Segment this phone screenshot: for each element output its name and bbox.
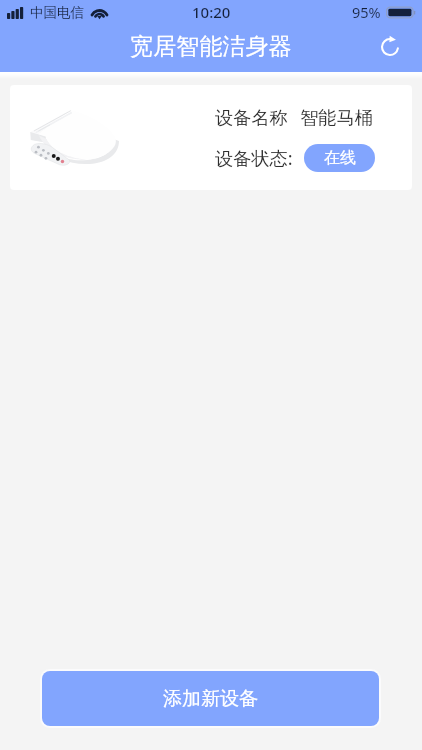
button[interactable]: 在线 [304,144,375,172]
staticText: 智能马桶 [300,106,373,129]
staticText: 设备名称 [215,106,288,129]
button[interactable]: 添加新设备 [42,671,379,726]
staticText: 宽居智能洁身器 [130,32,292,61]
button[interactable]: 设备名称 [10,85,412,190]
button[interactable]: Refresh [367,24,413,70]
staticText: 10:20 [192,2,231,22]
staticText: 95% [352,2,381,22]
staticText: 设备状态: [215,146,293,171]
staticText: 在线 [324,148,356,168]
staticText: 中国电信 [30,4,84,21]
staticText: 添加新设备 [163,687,258,711]
